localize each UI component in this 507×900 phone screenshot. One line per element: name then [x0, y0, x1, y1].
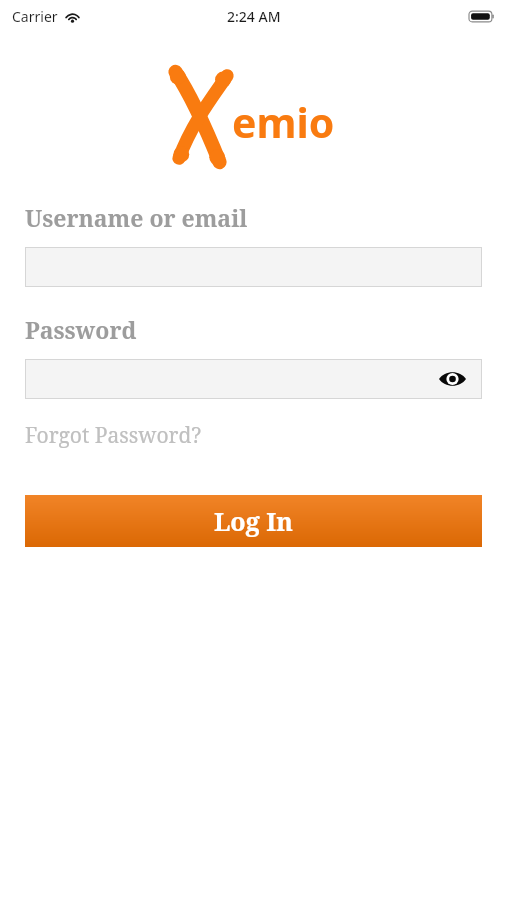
staticText: Password [25, 314, 137, 345]
button[interactable]: Log In [25, 495, 482, 547]
staticText: emio [232, 94, 335, 150]
staticText: 2:24 AM [227, 7, 281, 26]
staticText: Forgot Password? [25, 421, 202, 450]
staticText: Log In [214, 504, 293, 538]
button[interactable]: Show password [435, 366, 469, 392]
button[interactable]: Forgot Password? [25, 418, 202, 453]
staticText: Username or email [25, 202, 248, 233]
button[interactable]: Show password [26, 360, 481, 398]
staticText: Carrier [12, 7, 58, 26]
